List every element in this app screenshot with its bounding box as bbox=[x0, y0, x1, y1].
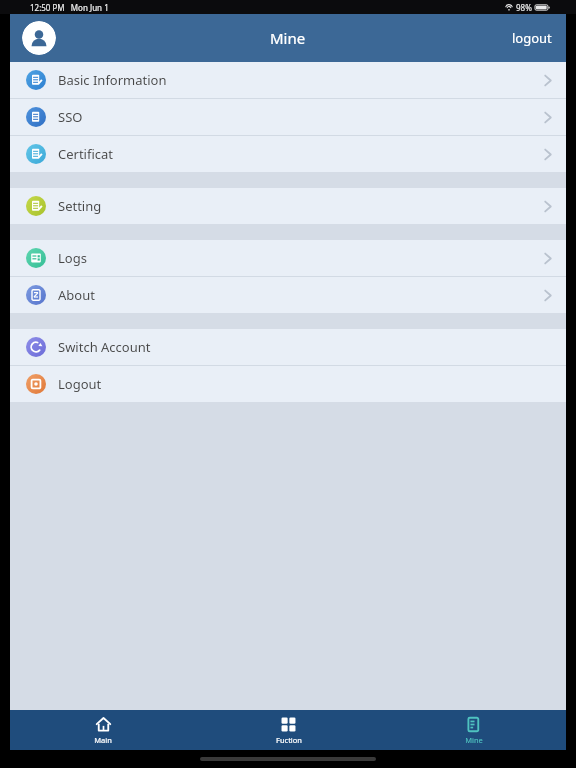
button[interactable]: Setting bbox=[10, 188, 566, 224]
button[interactable]: SSO bbox=[10, 99, 566, 135]
staticText: Basic Information bbox=[58, 71, 167, 89]
staticText: Certificat bbox=[58, 145, 114, 163]
staticText: 98% bbox=[516, 2, 532, 13]
button[interactable]: Switch Account bbox=[10, 329, 566, 365]
staticText: About bbox=[58, 286, 95, 304]
staticText: Setting bbox=[58, 197, 102, 215]
staticText: Mine bbox=[465, 735, 483, 745]
button[interactable]: Main bbox=[10, 710, 196, 750]
button[interactable]: logout bbox=[498, 19, 566, 57]
button[interactable]: Logout bbox=[10, 366, 566, 402]
staticText: Mine bbox=[270, 28, 306, 48]
button[interactable]: Fuction bbox=[196, 710, 381, 750]
button[interactable]: Certificat bbox=[10, 136, 566, 172]
staticText: 12:50 PM Mon Jun 1 bbox=[30, 2, 109, 13]
staticText: Switch Account bbox=[58, 338, 151, 356]
staticText: Logout bbox=[58, 375, 102, 393]
staticText: Logs bbox=[58, 249, 87, 267]
staticText: SSO bbox=[58, 108, 83, 126]
staticText: logout bbox=[512, 29, 552, 47]
button[interactable]: Basic Information bbox=[10, 62, 566, 98]
staticText: Main bbox=[94, 735, 112, 745]
button[interactable]: Profile bbox=[22, 21, 56, 55]
button[interactable]: Mine bbox=[381, 710, 566, 750]
button[interactable]: About bbox=[10, 277, 566, 313]
staticText: Fuction bbox=[276, 735, 302, 745]
button[interactable]: Logs bbox=[10, 240, 566, 276]
